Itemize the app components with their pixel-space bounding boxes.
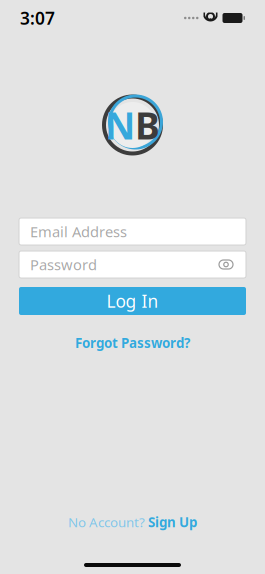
staticText: Log In <box>106 289 158 312</box>
button[interactable]: Forgot Password? <box>67 331 198 355</box>
button[interactable]: Show password <box>217 255 235 273</box>
button[interactable]: Log In <box>19 287 246 315</box>
button[interactable]: No Account? <box>58 509 207 535</box>
staticText: Email Address <box>30 222 127 241</box>
staticText: Password <box>30 255 97 274</box>
staticText: B <box>135 100 160 150</box>
staticText: N <box>105 100 135 150</box>
staticText: No Account? <box>68 513 145 531</box>
staticText: 3:07 <box>20 6 55 29</box>
staticText: Sign Up <box>148 513 197 531</box>
staticText: Forgot Password? <box>75 334 190 352</box>
